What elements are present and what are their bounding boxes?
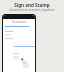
staticText: Sign and Stamp	[14, 2, 50, 8]
staticText: documents in seconds, anywhere	[9, 8, 55, 12]
staticText: Document	[12, 20, 26, 24]
